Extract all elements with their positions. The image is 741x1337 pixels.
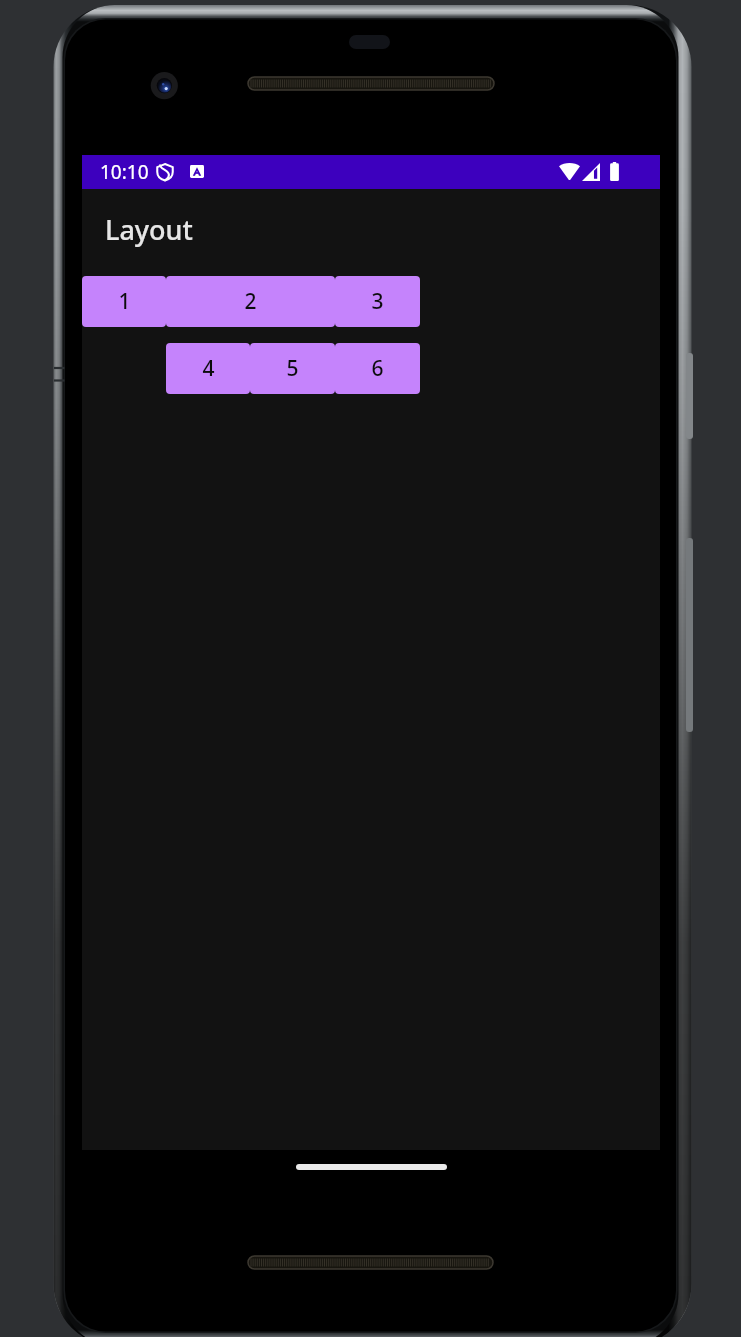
staticText: Layout	[105, 211, 193, 248]
staticText: 6	[371, 354, 384, 383]
button[interactable]: 4	[166, 343, 250, 394]
staticText: 1	[118, 287, 131, 316]
button[interactable]: 6	[335, 343, 420, 394]
staticText: 4	[202, 354, 215, 383]
staticText: 5	[286, 354, 299, 383]
staticText: 3	[371, 287, 384, 316]
button[interactable]: 2	[166, 276, 335, 327]
staticText: 2	[244, 287, 257, 316]
button[interactable]: 1	[82, 276, 166, 327]
button[interactable]: 5	[250, 343, 335, 394]
staticText: 10:10	[100, 159, 149, 185]
button[interactable]: 3	[335, 276, 420, 327]
